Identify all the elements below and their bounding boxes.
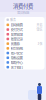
button[interactable]: 发票管理 (4, 32, 44, 37)
button[interactable]: 帮助中心 (4, 60, 44, 65)
button[interactable]: 账单记录 (4, 37, 44, 41)
button[interactable]: 优惠券 (4, 41, 44, 46)
staticText: 账户安全 (10, 50, 22, 55)
staticText: 服务 (10, 18, 16, 22)
staticText: 账单记录 (10, 36, 22, 41)
staticText: 帮助中心 (10, 60, 22, 65)
staticText: 自动续费 (10, 22, 22, 27)
staticText: 发票管理 (10, 32, 22, 37)
staticText: 3张 (37, 41, 42, 46)
staticText: 开启 (36, 23, 42, 27)
staticText: 会员权益 (17, 10, 29, 15)
staticText: 关于我们 (10, 65, 22, 70)
staticText: 优惠券 (10, 41, 19, 46)
button[interactable]: 支付方式 (4, 27, 44, 32)
staticText: 支付方式 (10, 27, 22, 32)
button[interactable]: 隐私设置 (4, 55, 44, 60)
staticText: 隐私设置 (10, 55, 22, 60)
staticText: 消费付费 (13, 2, 33, 10)
button[interactable]: 自动续费 (4, 22, 44, 27)
staticText: 微信 (36, 27, 42, 32)
button[interactable]: 账户安全 (4, 51, 44, 55)
button[interactable]: 关于我们 (4, 65, 44, 69)
staticText: 积分商城 (10, 46, 22, 51)
button[interactable]: 积分商城 (4, 46, 44, 51)
